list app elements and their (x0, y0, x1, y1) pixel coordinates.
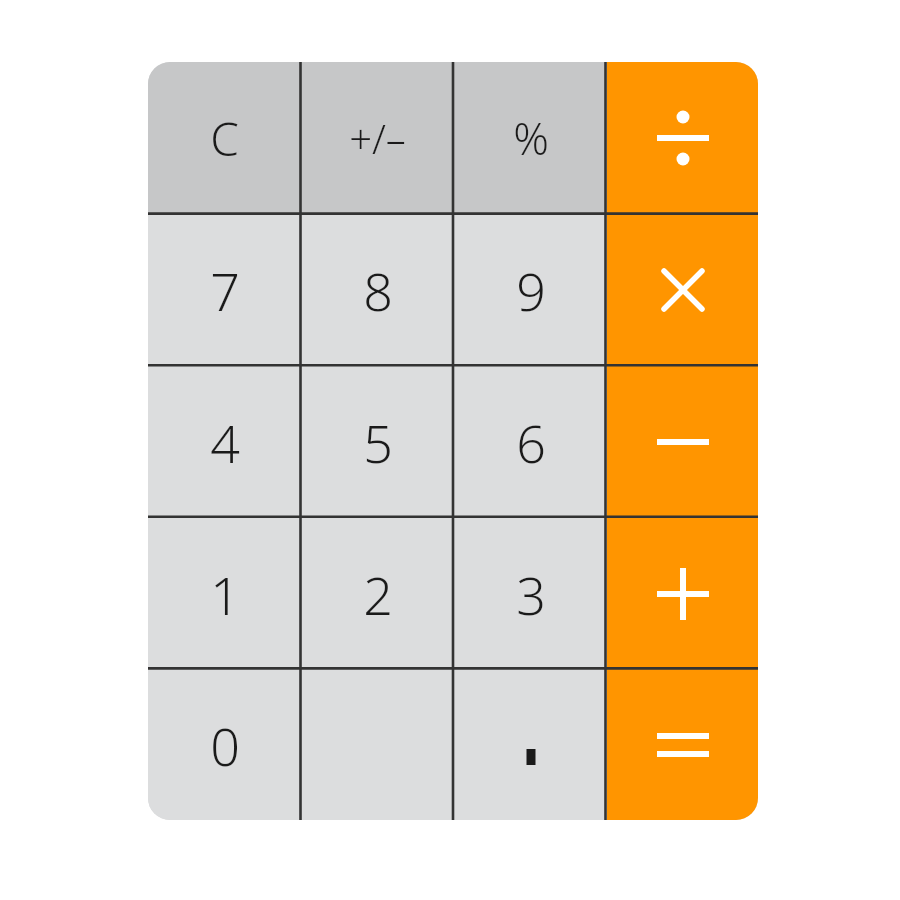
staticText: 5 (363, 407, 393, 478)
staticText: 2 (363, 559, 393, 630)
button[interactable]: Minus (607, 366, 758, 518)
button[interactable]: Plus (607, 518, 758, 670)
button[interactable]: 2 (301, 518, 454, 670)
button[interactable]: 0 (148, 670, 301, 820)
staticText: 1 (210, 559, 240, 630)
staticText: C (210, 107, 239, 170)
button[interactable]: Decimal point (454, 670, 607, 820)
button[interactable]: Equals (607, 670, 758, 820)
staticText: 8 (363, 255, 393, 326)
staticText: 3 (516, 559, 546, 630)
button[interactable]: Divide (607, 62, 758, 214)
button[interactable]: 9 (454, 214, 607, 366)
button[interactable]: C (148, 62, 301, 214)
button[interactable]: 4 (148, 366, 301, 518)
button[interactable]: Blank (301, 670, 454, 820)
staticText: 6 (516, 407, 546, 478)
button[interactable]: Plus minus (301, 62, 454, 214)
button[interactable]: 1 (148, 518, 301, 670)
button[interactable]: 6 (454, 366, 607, 518)
staticText: 0 (210, 710, 240, 781)
button[interactable]: 5 (301, 366, 454, 518)
staticText: 7 (210, 255, 240, 326)
button[interactable]: 7 (148, 214, 301, 366)
button[interactable]: Multiply (607, 214, 758, 366)
staticText: 4 (210, 407, 240, 478)
staticText: % (513, 108, 549, 168)
button[interactable]: 8 (301, 214, 454, 366)
staticText: +/– (349, 111, 406, 165)
button[interactable]: % (454, 62, 607, 214)
button[interactable]: 3 (454, 518, 607, 670)
staticText: 9 (516, 255, 546, 326)
